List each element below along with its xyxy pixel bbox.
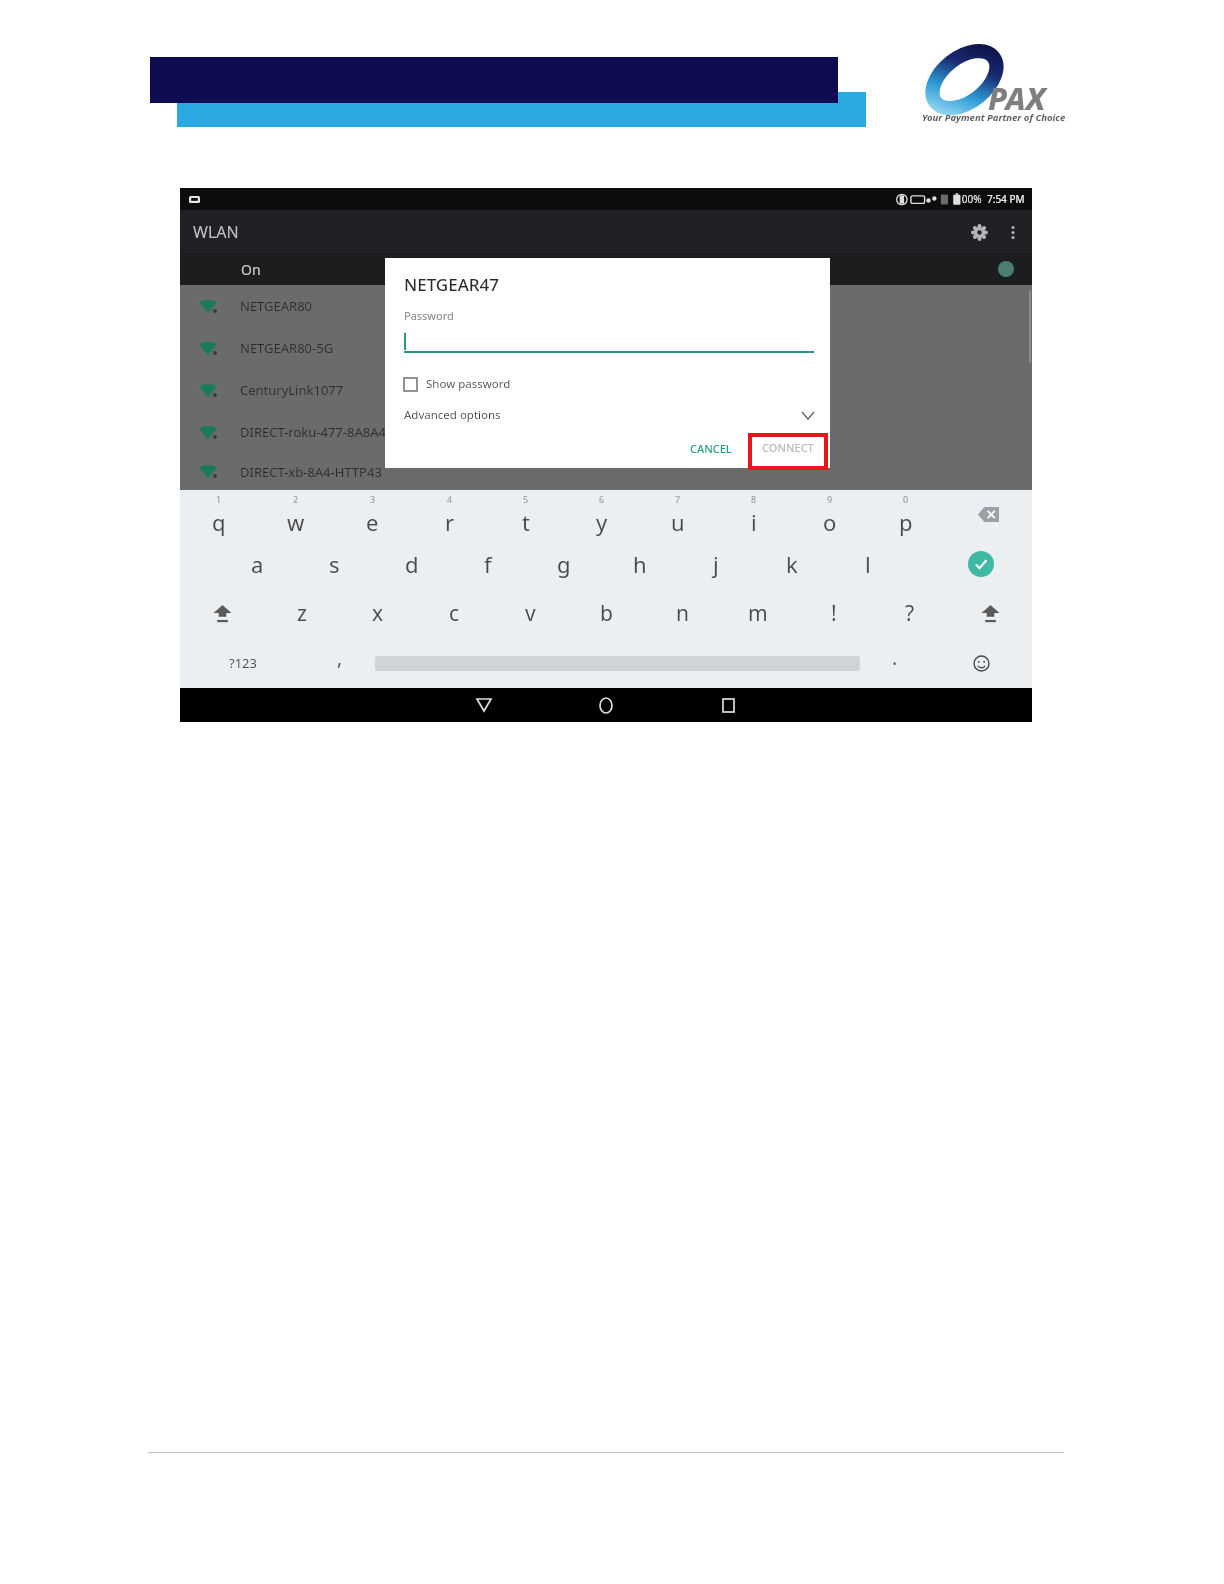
staticText: n xyxy=(676,599,689,628)
button[interactable]: Show password xyxy=(404,373,511,395)
button[interactable]: Home xyxy=(584,688,628,722)
button[interactable]: 4 xyxy=(411,490,488,539)
button[interactable]: g xyxy=(526,539,602,588)
button[interactable]: More options xyxy=(1000,219,1026,245)
button[interactable]: 6 xyxy=(564,490,640,539)
staticText: DIRECT-roku-477-8A8A4D xyxy=(240,423,396,441)
button[interactable]: 1 xyxy=(180,490,257,539)
button[interactable]: 8 xyxy=(716,490,792,539)
staticText: ! xyxy=(831,599,837,628)
staticText: PAX xyxy=(988,77,1046,119)
staticText: NETGEAR80 xyxy=(240,297,313,315)
button[interactable]: ! xyxy=(796,588,872,638)
staticText: g xyxy=(557,549,571,579)
button[interactable]: a xyxy=(219,539,296,588)
button[interactable]: z xyxy=(264,588,340,638)
staticText: Your Payment Partner of Choice xyxy=(922,111,1066,124)
button[interactable]: DIRECT-xb-8A4-HTTP43 xyxy=(180,453,1032,490)
button[interactable]: 5 xyxy=(488,490,564,539)
staticText: 100% xyxy=(956,192,982,206)
button[interactable]: 3 xyxy=(334,490,411,539)
button[interactable]: k xyxy=(754,539,830,588)
button[interactable]: . xyxy=(860,638,930,688)
staticText: w xyxy=(287,507,305,537)
staticText: f xyxy=(484,549,492,579)
staticText: 8 xyxy=(751,493,757,505)
staticText: s xyxy=(329,549,340,579)
button[interactable]: c xyxy=(416,588,492,638)
staticText: , xyxy=(337,645,343,671)
staticText: y xyxy=(596,507,608,537)
button[interactable]: Backspace xyxy=(944,490,1032,539)
button[interactable]: NETGEAR80 xyxy=(180,285,1032,327)
staticText: 0 xyxy=(903,493,909,505)
button[interactable]: j xyxy=(678,539,754,588)
staticText: 3 xyxy=(370,493,376,505)
button[interactable]: h xyxy=(602,539,678,588)
staticText: d xyxy=(405,549,419,579)
staticText: a xyxy=(251,549,264,579)
staticText: v xyxy=(525,599,536,628)
button[interactable]: 2 xyxy=(257,490,334,539)
button[interactable]: , xyxy=(305,638,375,688)
button[interactable]: NETGEAR80-5G xyxy=(180,327,1032,369)
staticText: ? xyxy=(905,599,915,628)
button[interactable]: n xyxy=(644,588,720,638)
staticText: . xyxy=(892,645,898,671)
staticText: h xyxy=(633,549,647,579)
staticText: p xyxy=(899,507,913,537)
button[interactable]: CONNECT xyxy=(750,431,826,464)
staticText: c xyxy=(449,599,460,628)
button[interactable]: On xyxy=(180,253,1032,285)
button[interactable]: b xyxy=(568,588,644,638)
button[interactable]: 0 xyxy=(868,490,944,539)
staticText: k xyxy=(786,549,798,579)
button[interactable]: f xyxy=(450,539,526,588)
staticText: Show password xyxy=(426,376,511,392)
button[interactable] xyxy=(404,329,814,353)
button[interactable]: 9 xyxy=(792,490,868,539)
button[interactable]: x xyxy=(340,588,416,638)
staticText: u xyxy=(671,507,685,537)
staticText: NETGEAR47 xyxy=(404,273,500,296)
staticText: 4 xyxy=(447,493,453,505)
staticText: 1 xyxy=(216,493,222,505)
staticText: o xyxy=(823,507,837,537)
staticText: b xyxy=(600,599,613,628)
staticText: x xyxy=(372,599,384,628)
staticText: NETGEAR80-5G xyxy=(240,339,334,357)
button[interactable]: 7 xyxy=(640,490,716,539)
button[interactable]: Shift xyxy=(180,588,264,638)
staticText: Password xyxy=(404,308,454,323)
button[interactable]: DIRECT-roku-477-8A8A4D xyxy=(180,411,1032,453)
button[interactable]: ? xyxy=(872,588,948,638)
button[interactable]: Recents xyxy=(706,688,750,722)
button[interactable]: Back xyxy=(462,688,506,722)
staticText: l xyxy=(865,549,871,579)
staticText: 9 xyxy=(827,493,833,505)
button[interactable]: l xyxy=(830,539,906,588)
staticText: WLAN xyxy=(193,221,239,243)
button[interactable]: Enter xyxy=(929,539,1032,588)
staticText: On xyxy=(241,260,261,279)
staticText: 2 xyxy=(293,493,299,505)
button[interactable]: Shift xyxy=(948,588,1032,638)
staticText: 6 xyxy=(599,493,605,505)
staticText: t xyxy=(522,507,530,537)
button[interactable]: Space xyxy=(375,638,860,688)
button[interactable]: m xyxy=(720,588,796,638)
button[interactable]: Settings xyxy=(964,217,994,247)
button[interactable]: Advanced options xyxy=(404,403,814,427)
button[interactable]: CenturyLink1077 xyxy=(180,369,1032,411)
button[interactable]: v xyxy=(492,588,568,638)
button[interactable]: ?123 xyxy=(180,638,305,688)
staticText: CenturyLink1077 xyxy=(240,381,344,399)
staticText: CONNECT xyxy=(762,440,814,455)
staticText: CANCEL xyxy=(690,441,732,456)
button[interactable]: d xyxy=(373,539,450,588)
staticText: z xyxy=(297,599,307,628)
button[interactable]: CANCEL xyxy=(690,433,732,463)
staticText: 7 xyxy=(675,493,681,505)
button[interactable]: Emoji xyxy=(930,638,1032,688)
button[interactable]: s xyxy=(296,539,373,588)
